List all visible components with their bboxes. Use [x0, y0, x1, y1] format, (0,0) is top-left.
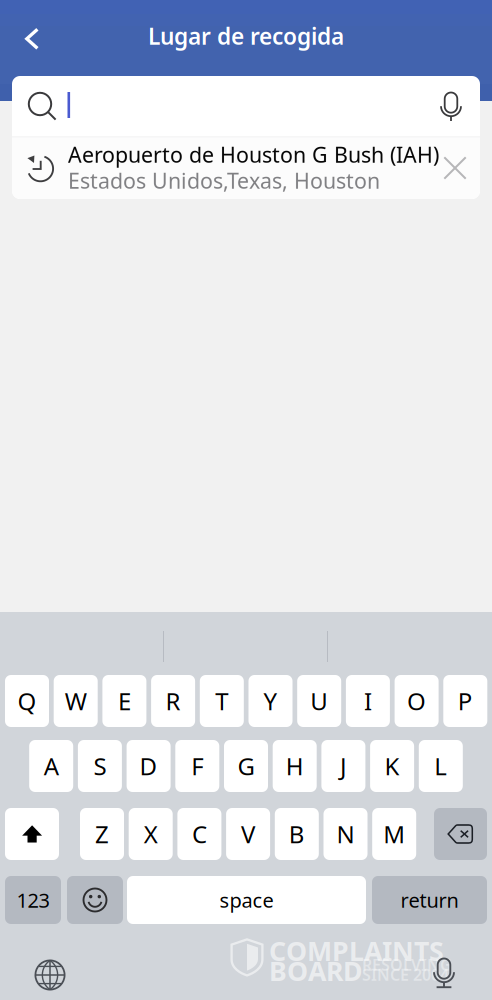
button[interactable]: Q: [5, 675, 49, 727]
button[interactable]: E: [102, 675, 146, 727]
button[interactable]: Delete: [434, 808, 487, 860]
staticText: Q: [17, 685, 36, 717]
button[interactable]: Switch keyboard: [33, 958, 67, 992]
staticText: E: [118, 685, 131, 717]
staticText: S: [93, 750, 106, 782]
button[interactable]: Back: [15, 22, 49, 56]
button[interactable]: B: [275, 808, 319, 860]
button[interactable]: U: [297, 675, 341, 727]
staticText: L: [434, 750, 447, 782]
staticText: COMPLAINTS: [269, 933, 444, 968]
button[interactable]: Lugar de recogida: [0, 24, 492, 48]
button[interactable]: F: [175, 740, 219, 792]
staticText: V: [241, 818, 255, 850]
staticText: 123: [16, 887, 49, 913]
staticText: O: [407, 685, 426, 717]
staticText: Z: [95, 818, 109, 850]
button[interactable]: V: [226, 808, 270, 860]
staticText: B: [289, 818, 305, 850]
staticText: I: [364, 685, 372, 717]
button[interactable]: T: [200, 675, 244, 727]
button[interactable]: Voice search: [432, 89, 470, 125]
button[interactable]: Shift: [5, 808, 59, 860]
staticText: Estados Unidos,Texas, Houston: [68, 166, 380, 195]
button[interactable]: Emoji: [67, 876, 123, 924]
button[interactable]: X: [129, 808, 173, 860]
button[interactable]: Z: [80, 808, 124, 860]
button[interactable]: space: [127, 876, 366, 924]
staticText: Lugar de recogida: [148, 21, 344, 51]
button[interactable]: R: [151, 675, 195, 727]
staticText: space: [219, 887, 273, 913]
button[interactable]: M: [372, 808, 416, 860]
staticText: Y: [263, 685, 277, 717]
staticText: U: [310, 685, 328, 717]
button[interactable]: return: [372, 876, 487, 924]
button[interactable]: P: [443, 675, 487, 727]
button[interactable]: C: [177, 808, 221, 860]
staticText: T: [215, 685, 228, 717]
button[interactable]: A: [29, 740, 73, 792]
staticText: D: [140, 750, 158, 782]
button[interactable]: S: [78, 740, 122, 792]
staticText: K: [385, 750, 400, 782]
staticText: W: [65, 685, 87, 717]
button[interactable]: G: [224, 740, 268, 792]
staticText: R: [166, 685, 181, 717]
button[interactable]: 123: [5, 876, 61, 924]
staticText: return: [400, 887, 458, 913]
staticText: F: [191, 750, 203, 782]
button[interactable]: Aeropuerto de Houston G Bush (IAH): [12, 137, 480, 199]
button[interactable]: L: [419, 740, 463, 792]
button[interactable]: N: [323, 808, 367, 860]
staticText: C: [192, 818, 207, 850]
staticText: M: [383, 818, 405, 850]
staticText: Aeropuerto de Houston G Bush (IAH): [68, 140, 439, 169]
staticText: X: [144, 818, 158, 850]
staticText: SINCE 2004: [362, 964, 449, 985]
button[interactable]: K: [370, 740, 414, 792]
button[interactable]: H: [273, 740, 317, 792]
button[interactable]: Dictate: [431, 956, 457, 990]
staticText: H: [286, 750, 304, 782]
button[interactable]: W: [54, 675, 98, 727]
button[interactable]: D: [127, 740, 171, 792]
staticText: J: [340, 750, 347, 782]
staticText: A: [44, 750, 59, 782]
button[interactable]: J: [321, 740, 365, 792]
button[interactable]: O: [395, 675, 439, 727]
staticText: G: [237, 750, 254, 782]
staticText: N: [336, 818, 354, 850]
staticText: BOARD: [269, 953, 363, 988]
button[interactable]: I: [346, 675, 390, 727]
button[interactable]: Y: [248, 675, 292, 727]
staticText: P: [458, 685, 473, 717]
staticText: RESOLVING: [362, 954, 452, 975]
